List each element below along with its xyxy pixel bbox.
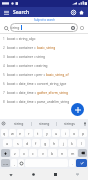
button[interactable]: Open navigation menu: [3, 9, 10, 16]
staticText: Search: [13, 9, 69, 16]
staticText: 5: [3, 73, 5, 77]
staticText: 3: [3, 55, 5, 59]
staticText: basic_string: [37, 46, 56, 50]
button[interactable]: string: [10, 23, 78, 32]
button[interactable]: h: [50, 139, 58, 147]
button[interactable]: strings: [57, 119, 81, 128]
staticText: boost » string_algo: [7, 37, 36, 41]
staticText: 4: [3, 64, 5, 68]
button[interactable]: Home: [77, 8, 85, 16]
staticText: j: [63, 141, 64, 146]
staticText: p: [82, 131, 85, 136]
button[interactable]: Emoji: [18, 159, 24, 167]
button[interactable]: e: [17, 129, 24, 137]
button[interactable]: l: [77, 139, 85, 147]
button[interactable]: g: [41, 139, 49, 147]
staticText: z: [14, 151, 16, 156]
staticText: v: [42, 151, 44, 156]
button[interactable]: f: [32, 139, 40, 147]
staticText: Subject to search: [34, 18, 55, 22]
button[interactable]: 2: [0, 43, 88, 52]
button[interactable]: 5: [0, 70, 88, 79]
button[interactable]: q: [1, 129, 8, 137]
staticText: string: [10, 25, 20, 30]
staticText: boost » container » wstring: [7, 64, 48, 68]
button[interactable]: w: [9, 129, 16, 137]
button[interactable]: c: [29, 149, 37, 157]
staticText: boost » container » pmr »: [7, 73, 46, 77]
staticText: .: [72, 161, 73, 166]
staticText: strings: [64, 121, 75, 126]
staticText: e: [19, 131, 22, 136]
button[interactable]: y: [43, 129, 51, 137]
staticText: gather_xform_string: [37, 91, 69, 95]
button[interactable]: ,: [11, 159, 17, 167]
button[interactable]: Add: [71, 103, 84, 116]
button[interactable]: r: [25, 129, 33, 137]
button[interactable]: a: [3, 139, 12, 147]
staticText: c: [32, 151, 34, 156]
button[interactable]: 3: [0, 52, 88, 61]
staticText: a: [6, 141, 9, 146]
staticText: 7: [3, 91, 5, 95]
button[interactable]: d: [23, 139, 31, 147]
button[interactable]: j: [59, 139, 67, 147]
button[interactable]: o: [70, 129, 78, 137]
button[interactable]: Voice input: [81, 119, 88, 128]
button[interactable]: 6: [0, 79, 88, 88]
staticText: o: [73, 131, 76, 136]
button[interactable]: ?123: [1, 159, 10, 167]
button[interactable]: 1: [0, 34, 88, 43]
button[interactable]: Clear query: [70, 25, 76, 31]
button[interactable]: n: [58, 149, 67, 157]
button[interactable]: Backspace: [78, 149, 87, 157]
staticText: x: [23, 151, 25, 156]
button[interactable]: Voice search: [78, 24, 86, 32]
button[interactable]: Recent apps: [44, 169, 66, 180]
button[interactable]: i: [61, 129, 69, 137]
button[interactable]: Hide keyboard: [66, 169, 88, 180]
button[interactable]: .: [69, 159, 75, 167]
staticText: r: [28, 131, 30, 136]
staticText: boost » date_time »: [7, 91, 37, 95]
button[interactable]: b: [48, 149, 57, 157]
button[interactable]: t: [34, 129, 42, 137]
button[interactable]: Settings: [69, 8, 77, 16]
staticText: basic_string_of: [46, 73, 69, 77]
staticText: k: [71, 141, 73, 146]
staticText: h: [53, 141, 56, 146]
button[interactable]: s: [13, 139, 22, 147]
staticText: y: [46, 131, 48, 136]
staticText: u: [55, 131, 58, 136]
staticText: m: [71, 151, 75, 156]
button[interactable]: u: [52, 129, 60, 137]
staticText: b: [51, 151, 54, 156]
staticText: i: [65, 131, 66, 136]
button[interactable]: Shift: [1, 149, 10, 157]
button[interactable]: Back: [0, 169, 22, 180]
button[interactable]: strong: [32, 119, 56, 128]
button[interactable]: string: [7, 119, 31, 128]
button[interactable]: Home: [22, 169, 44, 180]
button[interactable]: z: [11, 149, 19, 157]
staticText: d: [26, 141, 29, 146]
staticText: 6: [3, 82, 5, 86]
button[interactable]: p: [79, 129, 87, 137]
staticText: g: [44, 141, 47, 146]
button[interactable]: v: [38, 149, 47, 157]
button[interactable]: 4: [0, 61, 88, 70]
staticText: strong: [39, 121, 50, 126]
button[interactable]: x: [20, 149, 28, 157]
staticText: 8: [3, 100, 5, 104]
button[interactable]: 7: [0, 88, 88, 97]
button[interactable]: k: [68, 139, 76, 147]
staticText: boost » container »: [7, 46, 37, 50]
button[interactable]: More suggestions: [0, 119, 7, 128]
button[interactable]: Search: [2, 24, 10, 32]
staticText: 1: [3, 37, 5, 41]
staticText: boost » date_time » convert_string_type: [7, 82, 67, 86]
button[interactable]: 8: [0, 97, 88, 106]
button[interactable]: m: [68, 149, 77, 157]
button[interactable]: Enter: [76, 159, 87, 167]
